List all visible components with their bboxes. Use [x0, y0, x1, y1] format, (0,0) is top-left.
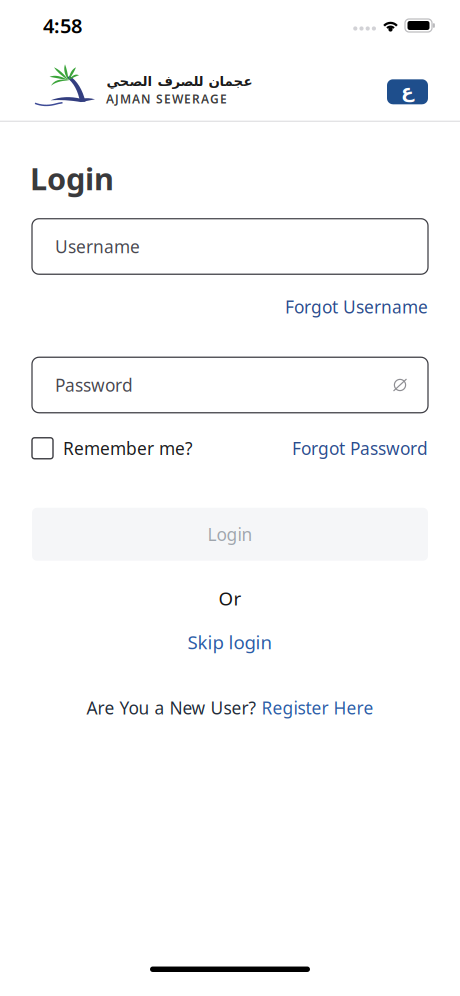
staticText: عجمان للصرف الصحي: [106, 74, 252, 89]
button[interactable]: Forgot Password: [292, 437, 428, 460]
staticText: Register Here: [261, 696, 373, 719]
staticText: ع: [400, 80, 413, 101]
button[interactable]: Skip login: [187, 629, 272, 654]
button[interactable]: Switch to Arabic: [387, 79, 428, 104]
staticText: A J M A N S E W E R A G E: [106, 91, 227, 107]
button[interactable]: Forgot Username: [285, 295, 428, 318]
staticText: Forgot Password: [292, 437, 428, 460]
button[interactable]: Login: [32, 508, 428, 561]
button[interactable]: Show password: [392, 378, 408, 392]
button[interactable]: Username: [32, 219, 428, 274]
staticText: Login: [30, 158, 114, 199]
button[interactable]: Password: [32, 357, 428, 413]
staticText: Password: [55, 373, 133, 396]
button[interactable]: Register Here: [261, 696, 373, 719]
staticText: Or: [218, 586, 241, 611]
staticText: Skip login: [187, 629, 272, 654]
staticText: Are You a New User?: [86, 696, 261, 719]
button[interactable]: Remember me: [32, 437, 193, 460]
staticText: Forgot Username: [285, 295, 428, 318]
staticText: 4:58: [43, 12, 82, 39]
staticText: Login: [207, 523, 252, 546]
staticText: Remember me?: [63, 437, 193, 460]
staticText: Username: [55, 235, 140, 258]
